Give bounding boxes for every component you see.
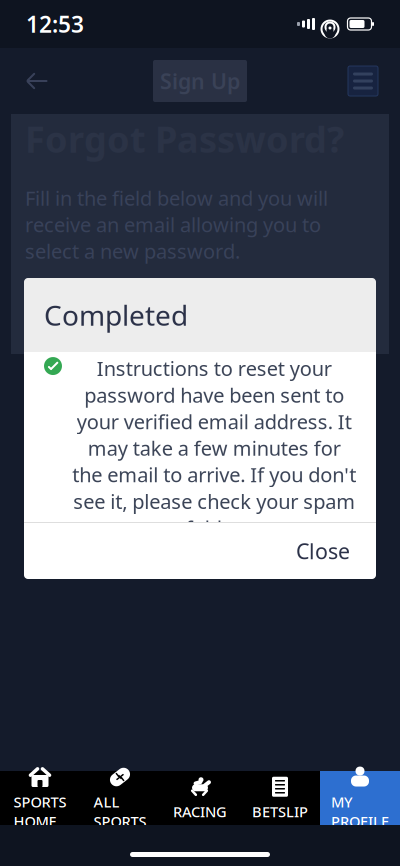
staticText: House Rules: [144, 482, 255, 507]
button[interactable]: FAQ: [0, 515, 400, 555]
staticText: Forgot Password?: [25, 115, 344, 163]
button[interactable]: Close: [282, 527, 364, 575]
button[interactable]: ALL SPORTS: [80, 771, 160, 825]
button[interactable]: Sign Up: [153, 60, 247, 102]
button[interactable]: House Rules: [0, 474, 400, 515]
staticText: Completed: [44, 296, 188, 334]
staticText: Sign Up: [160, 67, 240, 95]
button[interactable]: SPORTS HOME: [0, 771, 80, 825]
button[interactable]: Menu: [338, 56, 388, 106]
staticText: Close: [296, 537, 350, 565]
button[interactable]: RACING: [160, 771, 240, 825]
staticText: MY PROFILE: [331, 792, 389, 831]
button[interactable]: MY PROFILE: [320, 771, 400, 825]
button[interactable]: Back: [12, 58, 62, 104]
staticText: Copyright: [156, 441, 243, 466]
staticText: BOYDSPORTS»: [56, 368, 343, 421]
staticText: ALL SPORTS: [93, 792, 146, 831]
staticText: kc307111775: [25, 343, 154, 371]
staticText: BETSLIP: [252, 802, 308, 821]
button[interactable]: BETSLIP: [240, 771, 320, 825]
staticText: RACING: [173, 802, 227, 821]
staticText: 12:53: [26, 9, 84, 39]
staticText: SPORTS HOME: [13, 792, 66, 831]
staticText: BOYD REWARDS NUMBER (11 DIGITS) OR E-MAI…: [25, 286, 350, 329]
staticText: Fill in the field below and you will rec…: [25, 185, 328, 264]
button[interactable]: Copyright: [0, 433, 400, 474]
staticText: Instructions to reset your password have…: [72, 355, 356, 541]
